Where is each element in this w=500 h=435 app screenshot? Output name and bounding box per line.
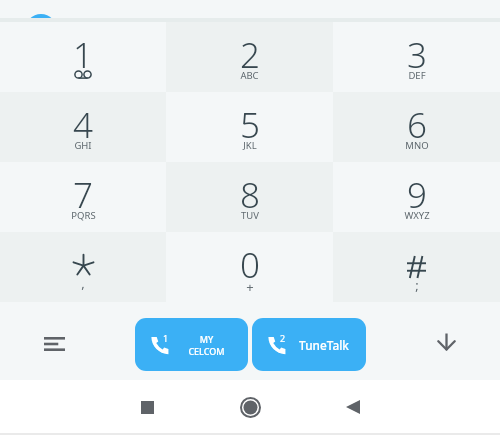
button[interactable]: 3 <box>333 22 500 92</box>
staticText: , <box>81 274 85 292</box>
staticText: ABC <box>240 69 259 82</box>
staticText: ; <box>415 276 419 294</box>
staticText: 0 <box>240 241 260 289</box>
button[interactable]: Call log <box>31 321 77 367</box>
staticText: + <box>246 278 254 296</box>
button[interactable]: 6 <box>333 92 500 162</box>
button[interactable]: Back <box>329 383 377 431</box>
button[interactable]: ; <box>333 232 500 302</box>
staticText: MNO <box>405 139 429 152</box>
button[interactable]: 9 <box>333 162 500 232</box>
staticText: DEF <box>408 69 426 82</box>
staticText: 1 <box>163 332 169 344</box>
button[interactable]: 2 <box>166 22 333 92</box>
staticText: PQRS <box>71 209 96 222</box>
button[interactable]: 2 <box>252 318 366 371</box>
staticText: 6 <box>407 101 427 149</box>
staticText: 7 <box>73 171 93 219</box>
staticText: WXYZ <box>404 209 430 222</box>
staticText: 2 <box>240 31 260 79</box>
button[interactable]: 1 <box>135 318 248 371</box>
staticText: MY CELCOM <box>175 333 238 357</box>
staticText: 4 <box>73 101 93 149</box>
staticText: 2 <box>280 332 286 344</box>
staticText: 1 <box>73 31 93 79</box>
button[interactable]: 0 <box>166 232 333 302</box>
staticText: GHI <box>74 139 92 152</box>
button[interactable]: Home <box>226 383 274 431</box>
staticText: 9 <box>407 171 427 219</box>
button[interactable]: Hide keypad <box>423 318 469 364</box>
staticText: TuneTalk <box>292 337 356 353</box>
staticText: 8 <box>240 171 260 219</box>
staticText: TUV <box>241 209 259 222</box>
button[interactable]: , <box>0 232 166 302</box>
button[interactable]: 8 <box>166 162 333 232</box>
button[interactable]: 1 <box>0 22 166 92</box>
staticText: JKL <box>243 139 257 152</box>
staticText: 5 <box>240 101 260 149</box>
button[interactable]: 7 <box>0 162 166 232</box>
button[interactable]: 4 <box>0 92 166 162</box>
button[interactable]: 5 <box>166 92 333 162</box>
staticText: 3 <box>407 31 427 79</box>
button[interactable]: Recents <box>123 383 171 431</box>
